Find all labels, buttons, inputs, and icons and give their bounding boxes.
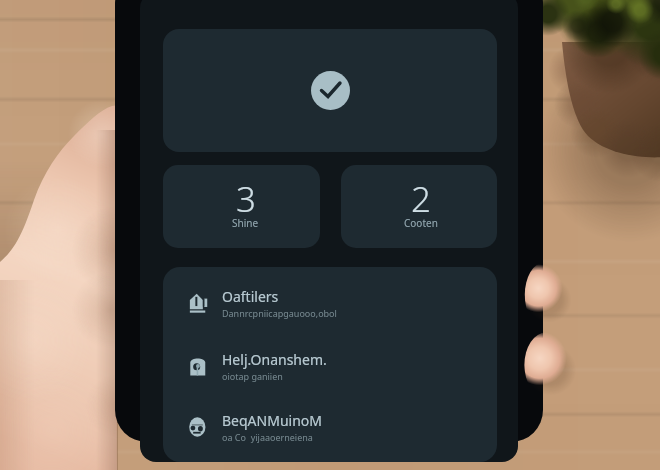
button[interactable]: Completed [163,29,497,152]
staticText: Oaftilers [222,287,279,306]
staticText: oa Co yijaaoerneiena [222,431,313,443]
staticText: 2 [411,175,431,223]
staticText: Helj.Onanshem. [222,350,327,369]
staticText: Dannrcpniicapgauooo,obol [222,307,337,319]
button[interactable]: Helj.Onanshem. [163,343,497,389]
button[interactable]: 3 [163,165,320,248]
staticText: Shine [232,216,259,230]
button[interactable]: 2 [341,165,497,248]
staticText: Cooten [404,216,438,230]
staticText: BeqANMuinoM [222,411,322,430]
staticText: oiotap ganiien [222,370,283,382]
button[interactable]: Oaftilers [163,280,497,326]
button[interactable]: BeqANMuinoM [163,404,497,450]
staticText: 3 [236,175,256,223]
other: Completed [311,71,350,110]
